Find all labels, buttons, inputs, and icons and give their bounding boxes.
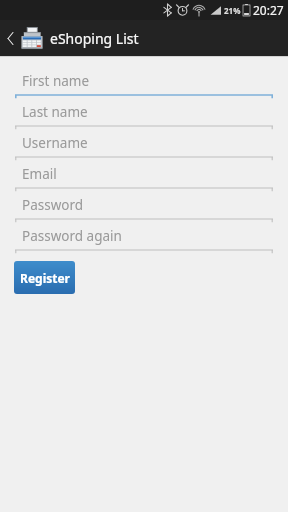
button[interactable]: Last name xyxy=(15,99,273,130)
staticText: Register xyxy=(20,270,70,286)
button[interactable]: Navigate up xyxy=(2,23,18,53)
button[interactable]: Username xyxy=(15,130,273,161)
staticText: 21% xyxy=(224,5,241,16)
staticText: 20:27 xyxy=(253,2,284,18)
button[interactable]: Email xyxy=(15,161,273,192)
staticText: First name xyxy=(22,72,90,90)
staticText: Username xyxy=(22,134,88,152)
staticText: Password again xyxy=(22,227,122,245)
button[interactable]: Register xyxy=(14,261,75,294)
button[interactable]: Password again xyxy=(15,223,273,254)
button[interactable]: Password xyxy=(15,192,273,223)
staticText: Password xyxy=(22,196,84,214)
staticText: Last name xyxy=(22,103,88,121)
staticText: eShoping List xyxy=(50,29,139,48)
staticText: Email xyxy=(22,165,57,183)
button[interactable]: First name xyxy=(15,68,273,99)
